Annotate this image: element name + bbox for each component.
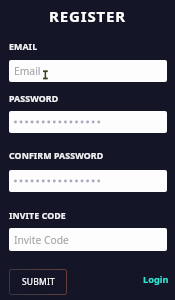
staticText: Invite Code [14,233,69,247]
button[interactable] [9,111,167,133]
staticText: Login [143,273,169,286]
staticText: INVITE CODE [9,210,66,222]
staticText: CONFIRM PASSWORD [9,150,104,162]
staticText: Email [14,64,41,78]
button[interactable]: Invite Code [9,228,167,251]
staticText: REGISTER [0,6,175,26]
staticText: PASSWORD [9,93,59,105]
button[interactable]: Login [0,273,169,286]
staticText: EMAIL [9,41,38,53]
button[interactable]: Email [9,60,167,82]
staticText: SUBMIT [22,276,55,288]
button[interactable]: SUBMIT [9,269,67,295]
button[interactable] [9,170,167,192]
